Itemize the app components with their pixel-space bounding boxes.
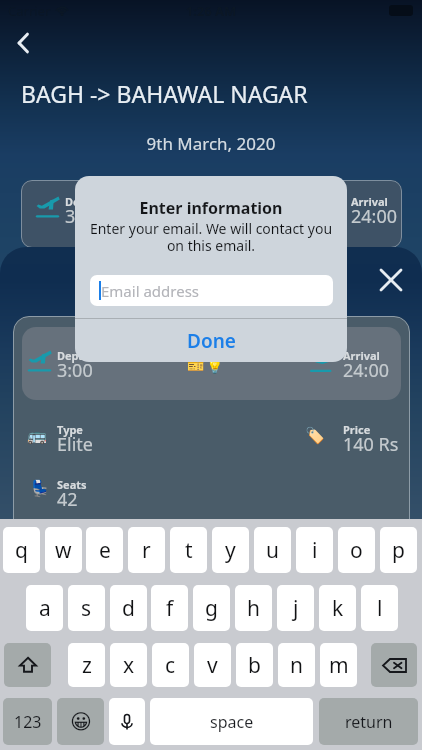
button[interactable]: f (151, 585, 188, 631)
button[interactable]: e (86, 527, 123, 573)
button[interactable]: c (152, 643, 189, 687)
staticText: w (55, 536, 72, 565)
staticText: 123 (14, 711, 42, 733)
button[interactable]: r (128, 527, 165, 573)
staticText: j (293, 594, 299, 623)
button[interactable]: v (194, 643, 231, 687)
button[interactable]: k (319, 585, 356, 631)
staticText: k (332, 594, 344, 623)
button[interactable]: h (235, 585, 272, 631)
staticText: Elite (57, 432, 93, 457)
button[interactable]: o (338, 527, 375, 573)
button[interactable]: Backspace (371, 643, 417, 687)
button[interactable]: x (110, 643, 147, 687)
button[interactable]: s (68, 585, 105, 631)
button[interactable]: n (278, 643, 315, 687)
staticText: n (290, 651, 303, 680)
staticText: 42 (57, 487, 78, 512)
button[interactable]: Close (369, 258, 412, 301)
button[interactable]: y (212, 527, 249, 573)
button[interactable]: Done (75, 319, 347, 362)
staticText: Done (187, 328, 236, 354)
button[interactable]: d (110, 585, 147, 631)
button[interactable]: Dictation (109, 698, 145, 745)
staticText: f (166, 594, 174, 623)
staticText: o (350, 536, 363, 565)
staticText: 140 Rs (343, 432, 399, 457)
button[interactable]: Emoji (57, 698, 104, 745)
button[interactable]: space (150, 698, 313, 745)
staticText: b (248, 651, 261, 680)
staticText: Email address (101, 281, 200, 301)
button[interactable]: t (170, 527, 207, 573)
staticText: 🎫 (187, 358, 205, 374)
staticText: 24:00 (343, 358, 390, 383)
button[interactable]: Email address (90, 275, 333, 306)
staticText: 💺 (30, 479, 49, 498)
button[interactable]: g (193, 585, 230, 631)
staticText: Enter your email. We will contact you on… (75, 219, 347, 255)
staticText: Price (343, 422, 371, 437)
staticText: e (99, 536, 111, 565)
staticText: Type (57, 422, 83, 437)
staticText: 24:00 (351, 204, 398, 229)
staticText: 3:00 (57, 358, 93, 383)
staticText: Departure (65, 194, 122, 209)
staticText: 3:00 (65, 204, 101, 229)
staticText: v (207, 651, 218, 680)
staticText: u (266, 536, 279, 565)
staticText: Arrival (351, 194, 388, 209)
staticText: r (142, 536, 151, 565)
staticText: Arrival (343, 348, 380, 363)
staticText: g (205, 594, 218, 623)
button[interactable]: m (320, 643, 357, 687)
staticText: space (210, 711, 254, 733)
staticText: y (225, 536, 236, 565)
button[interactable]: u (254, 527, 291, 573)
button[interactable]: p (380, 527, 417, 573)
staticText: 😀 (70, 710, 92, 734)
staticText: z (82, 651, 92, 680)
staticText: Departure (57, 348, 114, 363)
staticText: s (81, 594, 92, 623)
staticText: l (377, 594, 383, 623)
staticText: 🚌 (27, 426, 46, 445)
staticText: return (345, 711, 393, 733)
button[interactable]: Shift (4, 643, 51, 687)
staticText: i (312, 536, 318, 565)
button[interactable]: b (236, 643, 273, 687)
button[interactable]: q (3, 527, 40, 573)
staticText: q (15, 536, 28, 565)
staticText: 💡 (206, 358, 224, 374)
staticText: h (247, 594, 260, 623)
button[interactable]: z (68, 643, 105, 687)
button[interactable]: i (296, 527, 333, 573)
staticText: Seats (57, 477, 87, 492)
button[interactable]: Back (6, 26, 40, 60)
staticText: d (122, 594, 135, 623)
button[interactable]: 123 (3, 698, 52, 745)
button[interactable]: a (26, 585, 63, 631)
button[interactable]: l (361, 585, 398, 631)
staticText: x (123, 651, 135, 680)
staticText: 1:26 AM (0, 2, 422, 20)
staticText: c (165, 651, 176, 680)
staticText: 🏷 (305, 426, 324, 445)
staticText: t (185, 536, 193, 565)
staticText: a (39, 594, 51, 623)
staticText: p (392, 536, 405, 565)
staticText: 9th March, 2020 (0, 132, 422, 155)
staticText: Enter information (75, 197, 347, 219)
staticText: m (329, 651, 349, 680)
button[interactable]: return (319, 698, 418, 745)
button[interactable]: w (45, 527, 82, 573)
staticText: BAGH -> BAHAWAL NAGAR (21, 78, 308, 109)
button[interactable]: j (277, 585, 314, 631)
